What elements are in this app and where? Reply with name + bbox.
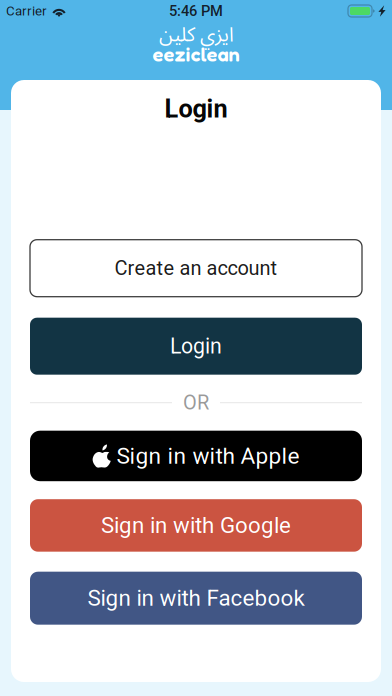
staticText: Login xyxy=(170,334,222,359)
button[interactable]: Create an account xyxy=(30,240,362,297)
staticText: Sign in with Google xyxy=(101,512,291,538)
button[interactable]: Sign in with Apple xyxy=(30,431,362,481)
staticText: ايزي كلين xyxy=(158,14,233,56)
staticText: 5:46 PM xyxy=(169,2,223,20)
staticText: Carrier xyxy=(6,3,47,19)
button[interactable]: Sign in with Facebook xyxy=(30,572,362,625)
staticText: Sign in with Apple xyxy=(116,443,299,469)
staticText: Login xyxy=(164,94,227,124)
button[interactable]: Login xyxy=(30,318,362,375)
staticText: Sign in with Facebook xyxy=(87,585,304,611)
staticText: OR xyxy=(183,391,209,414)
button[interactable]: Sign in with Google xyxy=(30,499,362,552)
staticText: Create an account xyxy=(114,256,277,280)
staticText: eeziclean xyxy=(152,42,239,66)
